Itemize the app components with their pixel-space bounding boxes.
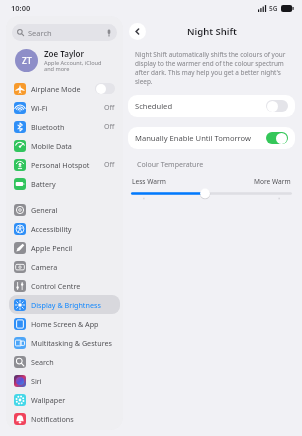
button[interactable]: Colour temperature slider <box>131 188 292 200</box>
staticText: Apple Pencil <box>31 243 73 253</box>
staticText: Wi-Fi <box>31 103 48 113</box>
button[interactable]: General <box>9 200 120 219</box>
staticText: Bluetooth <box>31 122 65 132</box>
staticText: Wallpaper <box>31 395 66 405</box>
button[interactable]: Toggle off <box>266 100 288 112</box>
button[interactable]: Wallpaper <box>9 390 120 409</box>
staticText: Control Centre <box>31 281 81 291</box>
staticText: Mobile Data <box>31 141 72 151</box>
staticText: Night Shift automatically shifts the col… <box>135 50 288 86</box>
button[interactable]: Notifications <box>9 409 120 428</box>
staticText: Notifications <box>31 414 74 424</box>
staticText: Camera <box>31 262 58 272</box>
button[interactable]: Battery <box>9 174 120 193</box>
staticText: Colour Temperature <box>137 160 204 170</box>
staticText: Zoe Taylor <box>44 48 84 59</box>
staticText: Display & Brightness <box>31 300 101 310</box>
staticText: Manually Enable Until Tomorrow <box>135 133 252 143</box>
staticText: More Warm <box>254 177 291 186</box>
staticText: Scheduled <box>135 101 173 111</box>
button[interactable]: Home Screen & App Library <box>9 314 120 333</box>
staticText: Search <box>31 357 54 367</box>
staticText: Siri <box>31 376 42 386</box>
button[interactable]: Back <box>129 23 146 40</box>
staticText: ZT <box>22 55 32 67</box>
button[interactable]: Mobile Data <box>9 136 120 155</box>
staticText: Night Shift <box>187 25 237 38</box>
staticText: 5G <box>269 4 278 13</box>
button[interactable]: Toggle off <box>95 83 115 94</box>
staticText: Battery <box>31 179 56 189</box>
staticText: Multitasking & Gestures <box>31 338 112 348</box>
staticText: Apple Account, iCloud and more <box>44 59 102 73</box>
button[interactable]: Bluetooth <box>9 117 120 136</box>
staticText: Accessibility <box>31 224 72 234</box>
staticText: Home Screen & App Library <box>31 319 115 329</box>
button[interactable]: Wi-Fi <box>9 98 120 117</box>
button[interactable]: Scheduled <box>128 95 295 117</box>
button[interactable]: Camera <box>9 257 120 276</box>
button[interactable]: ZT <box>6 41 123 79</box>
button[interactable]: Search <box>12 24 117 41</box>
staticText: Off <box>104 122 115 132</box>
staticText: Airplane Mode <box>31 84 81 94</box>
staticText: Personal Hotspot <box>31 160 90 170</box>
staticText: General <box>31 205 58 215</box>
staticText: Less Warm <box>132 177 166 186</box>
button[interactable]: Accessibility <box>9 219 120 238</box>
button[interactable]: Toggle on <box>266 132 288 144</box>
button[interactable]: Control Centre <box>9 276 120 295</box>
button[interactable]: Manually Enable Until Tomorrow <box>128 127 295 149</box>
button[interactable]: Personal Hotspot <box>9 155 120 174</box>
staticText: 10:00 <box>11 3 31 13</box>
button[interactable]: Display & Brightness <box>9 295 120 314</box>
staticText: Off <box>104 160 115 170</box>
button[interactable]: Airplane Mode <box>9 79 120 98</box>
button[interactable]: Apple Pencil <box>9 238 120 257</box>
button[interactable]: Search <box>9 352 120 371</box>
button[interactable]: Multitasking & Gestures <box>9 333 120 352</box>
staticText: Search <box>28 28 52 38</box>
staticText: Off <box>104 103 115 113</box>
button[interactable]: Siri <box>9 371 120 390</box>
